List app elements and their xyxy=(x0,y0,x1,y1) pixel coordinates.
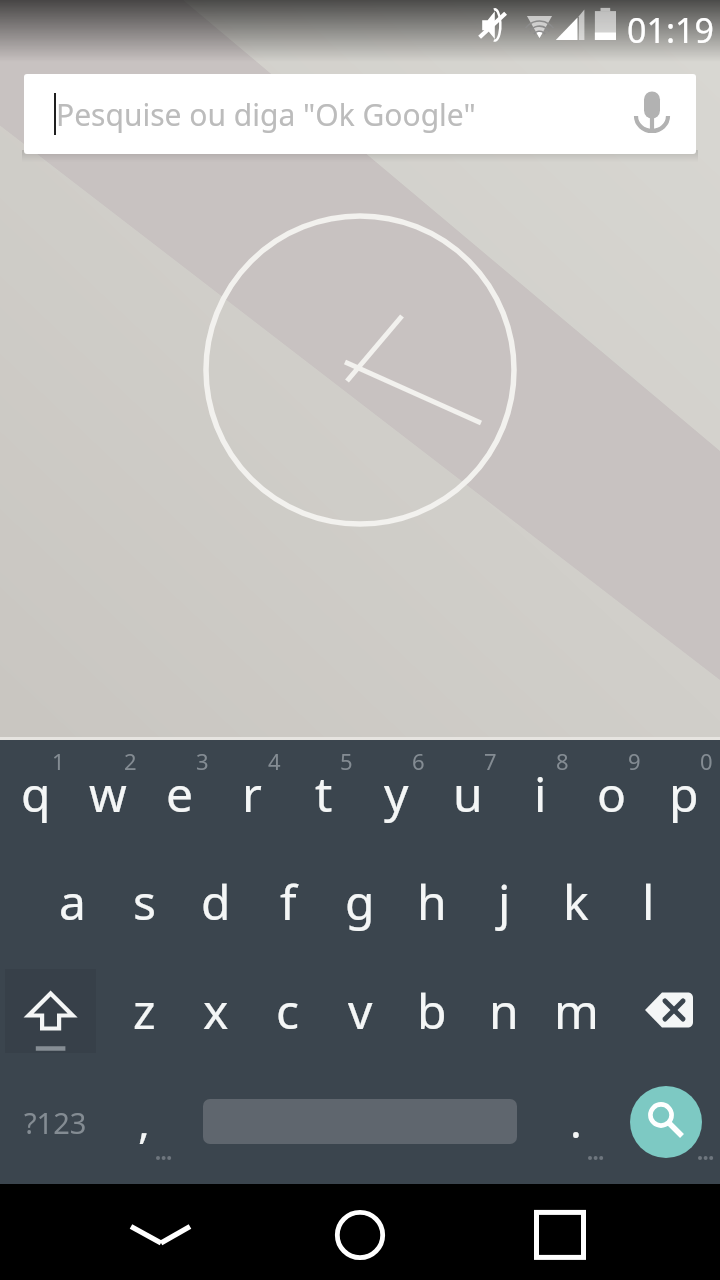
staticText: v xyxy=(348,978,373,1043)
button[interactable] xyxy=(180,848,252,956)
staticText: z xyxy=(133,978,156,1043)
staticText: n xyxy=(489,978,519,1043)
staticText: 3 xyxy=(196,746,209,776)
staticText: 01:19 xyxy=(627,7,714,53)
button[interactable] xyxy=(432,740,504,848)
staticText: c xyxy=(276,978,300,1043)
button[interactable] xyxy=(144,740,216,848)
staticText: 0 xyxy=(700,746,713,776)
staticText: d xyxy=(201,869,231,934)
button[interactable] xyxy=(527,1065,610,1184)
staticText: 7 xyxy=(484,746,497,776)
staticText: ?123 xyxy=(24,1103,87,1142)
button[interactable] xyxy=(540,956,612,1065)
button[interactable] xyxy=(108,848,180,956)
staticText: 6 xyxy=(412,746,425,776)
button[interactable] xyxy=(0,1065,110,1184)
button[interactable] xyxy=(576,740,648,848)
other: Voice search xyxy=(622,84,682,144)
staticText: 8 xyxy=(556,746,569,776)
button[interactable] xyxy=(36,848,108,956)
button[interactable] xyxy=(324,956,396,1065)
staticText: p xyxy=(669,761,699,826)
button[interactable] xyxy=(612,848,684,956)
staticText: e xyxy=(166,761,194,826)
button[interactable] xyxy=(540,848,612,956)
staticText: f xyxy=(280,869,297,934)
staticText: l xyxy=(642,869,655,934)
staticText: s xyxy=(133,869,156,934)
staticText: t xyxy=(315,761,333,826)
staticText: h xyxy=(417,869,447,934)
button[interactable] xyxy=(504,740,576,848)
button[interactable] xyxy=(180,956,252,1065)
button[interactable]: Search xyxy=(610,1065,720,1184)
button[interactable] xyxy=(252,848,324,956)
button[interactable] xyxy=(360,740,432,848)
staticText: 1 xyxy=(52,746,65,776)
staticText: 2 xyxy=(124,746,137,776)
button[interactable] xyxy=(252,956,324,1065)
staticText: , xyxy=(138,1091,150,1151)
staticText: 4 xyxy=(268,746,281,776)
button[interactable] xyxy=(396,956,468,1065)
staticText: b xyxy=(417,978,447,1043)
button[interactable] xyxy=(72,740,144,848)
staticText: m xyxy=(554,978,599,1043)
button[interactable] xyxy=(468,848,540,956)
button[interactable] xyxy=(648,740,720,848)
staticText: Pesquise ou diga "Ok Google" xyxy=(56,94,476,135)
button[interactable]: Space xyxy=(193,1065,527,1184)
staticText: u xyxy=(453,761,483,826)
button[interactable] xyxy=(396,848,468,956)
staticText: a xyxy=(59,869,86,934)
button[interactable]: Pesquise ou diga "Ok Google" xyxy=(24,74,696,154)
button[interactable] xyxy=(468,956,540,1065)
staticText: g xyxy=(345,869,375,934)
staticText: q xyxy=(21,761,51,826)
staticText: y xyxy=(384,761,409,826)
button[interactable] xyxy=(324,848,396,956)
staticText: i xyxy=(534,761,547,826)
button[interactable] xyxy=(110,1065,193,1184)
button[interactable]: Shift xyxy=(0,956,108,1065)
button[interactable] xyxy=(0,740,72,848)
button[interactable] xyxy=(216,740,288,848)
button[interactable]: Home xyxy=(300,1184,420,1280)
staticText: 5 xyxy=(340,746,353,776)
button[interactable]: Back xyxy=(101,1184,221,1280)
button[interactable]: Backspace xyxy=(612,956,720,1065)
staticText: r xyxy=(242,761,262,826)
staticText: j xyxy=(498,869,511,934)
staticText: o xyxy=(597,761,627,826)
button[interactable] xyxy=(108,956,180,1065)
staticText: w xyxy=(89,761,127,826)
staticText: k xyxy=(563,869,589,934)
staticText: x xyxy=(203,978,229,1043)
staticText: . xyxy=(570,1091,582,1151)
button[interactable]: Recents xyxy=(500,1184,620,1280)
staticText: 9 xyxy=(628,746,641,776)
button[interactable] xyxy=(288,740,360,848)
